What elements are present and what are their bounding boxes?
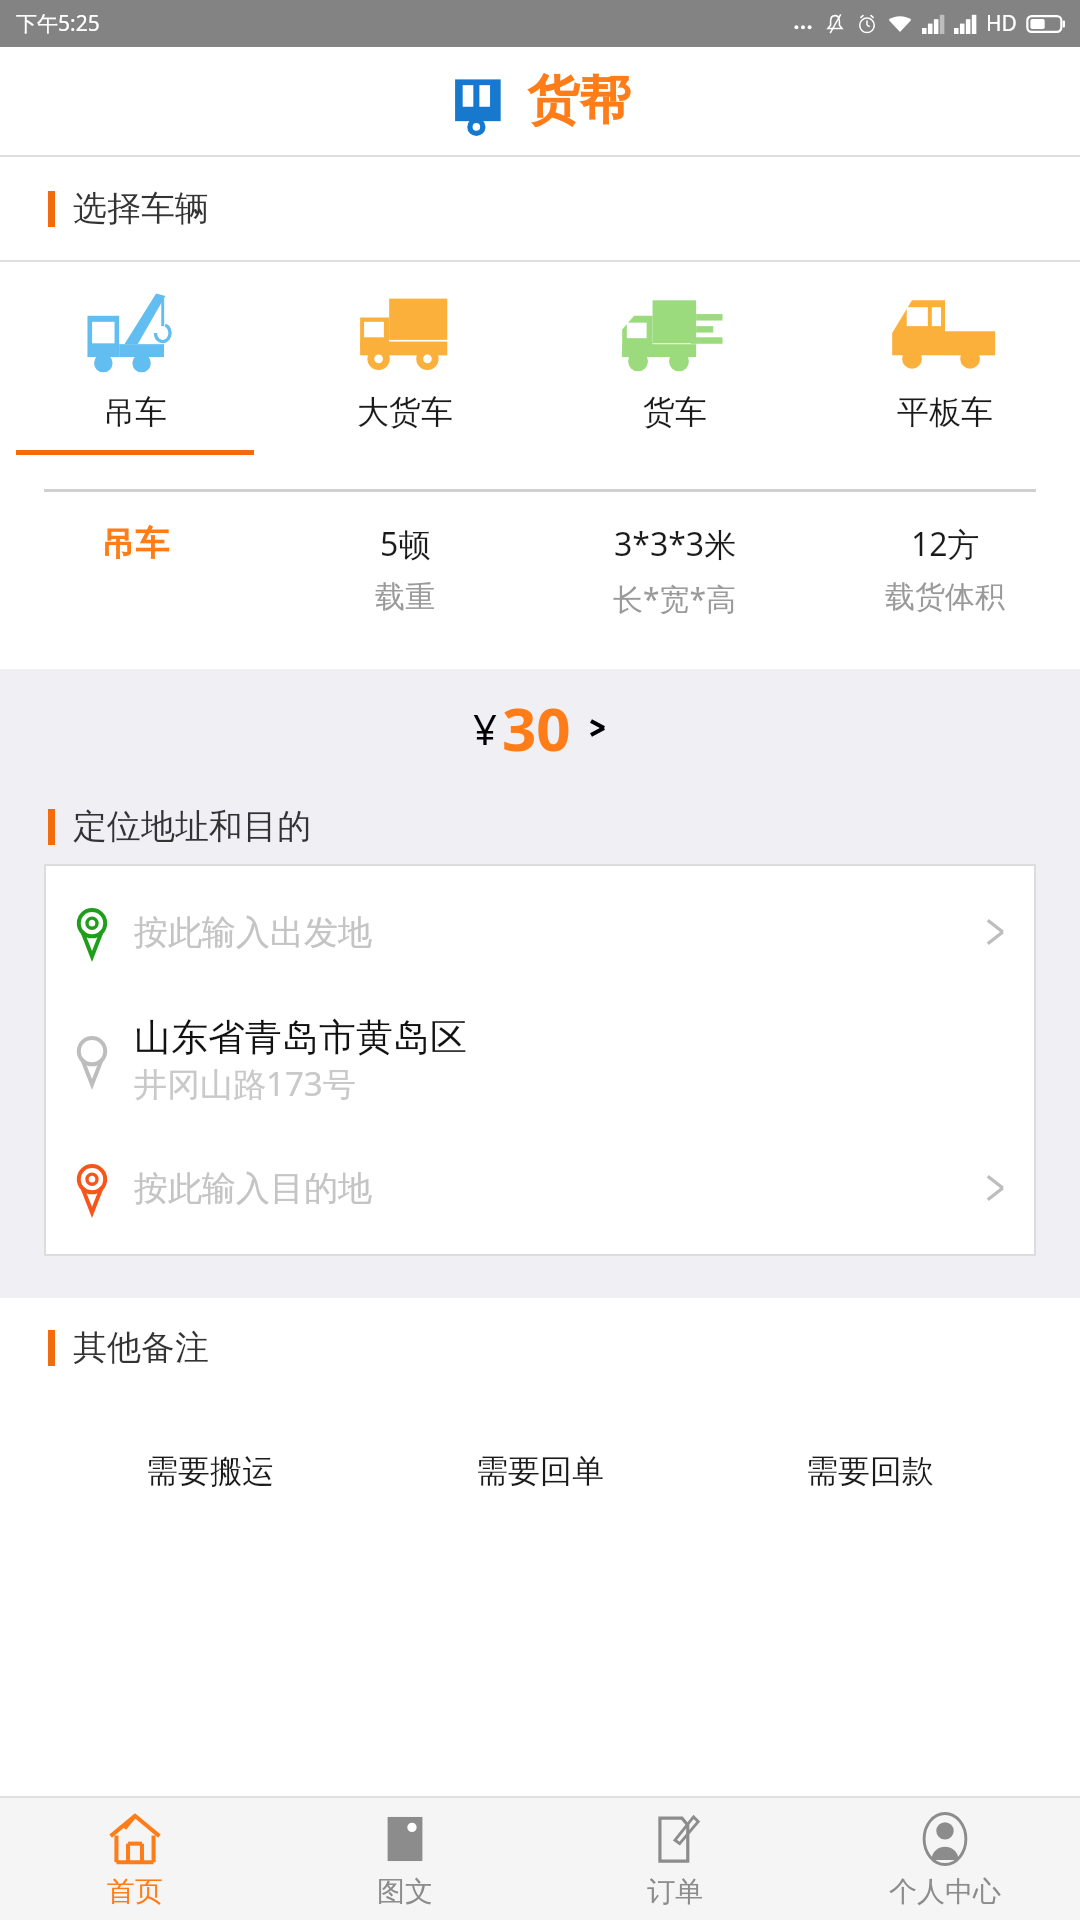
staticText: 按此输入出发地 <box>134 911 372 954</box>
staticText: 个人中心 <box>889 1874 1001 1909</box>
button[interactable]: 图文 <box>270 1798 540 1920</box>
staticText: 吊车 <box>103 392 167 432</box>
staticText: ¥ <box>473 700 498 757</box>
button[interactable]: 首页 <box>0 1798 270 1920</box>
button[interactable]: 货车 <box>540 290 810 455</box>
other: 展开 <box>982 911 1008 953</box>
staticText: 山东省青岛市黄岛区 <box>134 1014 467 1061</box>
button[interactable]: 按此输入目的地 <box>44 1120 1036 1256</box>
button[interactable]: 需要回款 <box>800 1445 940 1497</box>
button[interactable]: 大货车 <box>270 290 540 455</box>
staticText: 需要搬运 <box>146 1451 274 1491</box>
staticText: 载重 <box>375 578 435 616</box>
staticText: 下午5:25 <box>16 9 100 38</box>
staticText: 12方 <box>911 522 980 566</box>
staticText: 载货体积 <box>885 578 1005 616</box>
staticText: 按此输入目的地 <box>134 1167 372 1210</box>
staticText: HD <box>986 9 1017 38</box>
staticText: 货车 <box>643 392 707 432</box>
staticText: 平板车 <box>897 392 993 432</box>
staticText: 大货车 <box>357 392 453 432</box>
other: 展开 <box>982 1167 1008 1209</box>
staticText: 3*3*3米 <box>614 522 737 566</box>
button[interactable]: 个人中心 <box>810 1798 1080 1920</box>
staticText: 定位地址和目的 <box>73 805 311 848</box>
button[interactable]: 订单 <box>540 1798 810 1920</box>
staticText: 需要回款 <box>806 1451 934 1491</box>
staticText: 订单 <box>647 1874 703 1909</box>
staticText: 图文 <box>377 1874 433 1909</box>
button[interactable]: 吊车 <box>0 290 270 455</box>
staticText: 选择车辆 <box>73 187 209 230</box>
staticText: 其他备注 <box>73 1326 209 1369</box>
staticText: 货帮 <box>527 68 631 134</box>
button[interactable]: 山东省青岛市黄岛区 <box>44 1000 1036 1120</box>
staticText: 5顿 <box>380 522 431 566</box>
button[interactable]: 平板车 <box>810 290 1080 455</box>
staticText: 首页 <box>107 1874 163 1909</box>
staticText: 井冈山路173号 <box>134 1061 356 1106</box>
button[interactable]: 需要回单 <box>470 1445 610 1497</box>
staticText: 30 <box>502 687 571 769</box>
button[interactable]: 需要搬运 <box>140 1445 280 1497</box>
button[interactable]: 按此输入出发地 <box>44 864 1036 1000</box>
staticText: 吊车 <box>101 522 169 565</box>
staticText: 需要回单 <box>476 1451 604 1491</box>
staticText: 长*宽*高 <box>613 578 737 619</box>
button[interactable]: ¥ <box>0 669 1080 787</box>
